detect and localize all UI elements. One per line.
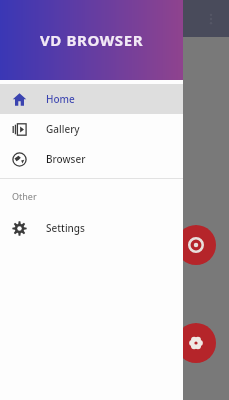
staticText: Home [46,92,75,106]
button[interactable]: Settings shortcut [176,323,216,363]
button[interactable]: Home [0,84,183,114]
staticText: Settings [46,221,85,235]
staticText: Other [12,190,37,202]
staticText: Gallery [46,122,80,136]
staticText: Browser [46,152,86,166]
staticText: VD BROWSER [40,30,144,50]
button[interactable]: Gallery [0,114,183,144]
button[interactable]: Record [176,225,216,265]
button[interactable]: Settings [0,213,183,243]
button[interactable]: Browser [0,144,183,174]
